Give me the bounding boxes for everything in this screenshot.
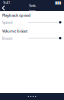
staticText: Boost (2, 35, 12, 41)
button[interactable]: Back (2, 5, 5, 11)
staticText: Playback speed (2, 12, 31, 18)
staticText: Settings (29, 3, 36, 13)
staticText: Volume boost (2, 28, 28, 34)
staticText: 9:41 (3, 0, 10, 5)
staticText: ▮▮▮ (55, 0, 61, 5)
staticText: Speed (2, 20, 12, 25)
